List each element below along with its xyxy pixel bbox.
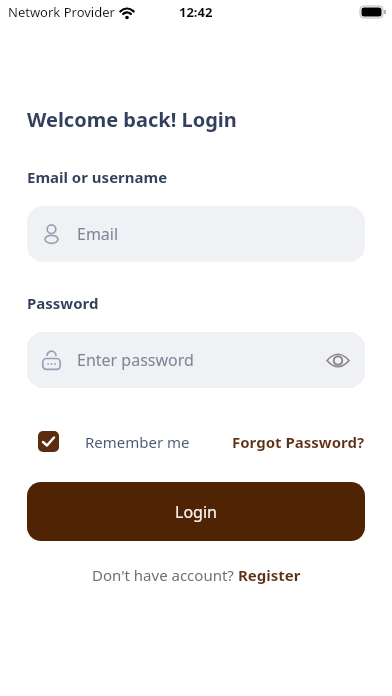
button[interactable]: Register	[238, 565, 301, 585]
staticText: Enter password	[77, 349, 194, 371]
staticText: Login	[175, 501, 217, 523]
staticText: 12:42	[179, 3, 213, 21]
staticText: Email	[77, 223, 119, 245]
button[interactable]: Enter password	[27, 332, 365, 388]
button[interactable]: Login	[27, 482, 365, 541]
staticText: Password	[27, 293, 99, 313]
staticText: Network Provider	[8, 3, 115, 21]
staticText: Remember me	[85, 432, 190, 452]
staticText: Welcome back! Login	[27, 106, 237, 133]
button[interactable]: Forgot Password?	[232, 432, 365, 452]
button[interactable]: Email	[27, 206, 365, 262]
button[interactable]	[38, 431, 59, 452]
staticText: Don't have account?	[92, 565, 238, 585]
staticText: Email or username	[27, 167, 168, 187]
